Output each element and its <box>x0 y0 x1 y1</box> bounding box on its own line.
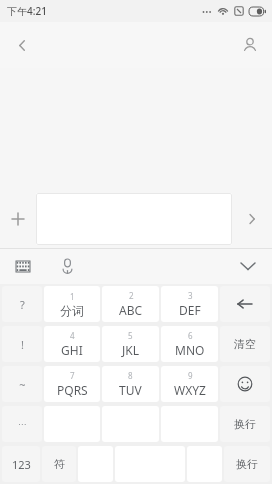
button[interactable]: Profile <box>228 23 272 67</box>
button[interactable]: 符 <box>42 446 76 482</box>
staticText: 5 <box>128 330 133 341</box>
staticText: 换行 <box>236 457 258 471</box>
button[interactable]: Key <box>220 286 270 322</box>
button[interactable]: 1 <box>44 286 100 322</box>
button[interactable]: ~ <box>2 366 42 402</box>
button[interactable]: 换行 <box>220 406 270 442</box>
button[interactable]: Back <box>0 23 44 67</box>
staticText: 2 <box>129 290 134 301</box>
staticText: JKL <box>122 342 139 358</box>
button[interactable]: Hide keyboard <box>234 252 262 280</box>
button[interactable]: 清空 <box>220 326 270 362</box>
staticText: 分词 <box>60 303 84 318</box>
button[interactable]: 8 <box>102 366 159 402</box>
staticText: GHI <box>61 342 83 358</box>
button[interactable]: Add attachment <box>0 190 36 248</box>
staticText: 1 <box>70 291 75 302</box>
button[interactable]: ⋯ <box>2 406 42 442</box>
staticText: 123 <box>12 457 31 472</box>
button[interactable]: 7 <box>44 366 100 402</box>
staticText: ? <box>20 297 25 312</box>
staticText: 3 <box>188 290 193 301</box>
staticText: 清空 <box>234 337 256 351</box>
button[interactable] <box>36 193 232 245</box>
staticText: TUV <box>119 382 142 398</box>
staticText: 9 <box>188 370 193 381</box>
staticText: ⋯ <box>18 420 26 429</box>
button[interactable]: 9 <box>161 366 218 402</box>
staticText: 7 <box>70 370 75 381</box>
staticText: 下午4:21 <box>7 4 47 18</box>
button[interactable]: 换行 <box>224 446 270 482</box>
button[interactable]: ? <box>2 286 42 322</box>
button[interactable]: Send <box>232 190 272 248</box>
button[interactable]: Voice input <box>54 253 80 279</box>
button[interactable]: 5 <box>102 326 159 362</box>
button[interactable]: Key <box>220 366 270 402</box>
button[interactable]: ! <box>2 326 42 362</box>
staticText: 6 <box>188 330 193 341</box>
button[interactable]: 4 <box>44 326 100 362</box>
staticText: PQRS <box>57 382 88 398</box>
staticText: WXYZ <box>174 382 206 398</box>
button[interactable]: Keyboard layout <box>10 253 36 279</box>
staticText: MNO <box>175 342 205 358</box>
staticText: 换行 <box>234 417 256 431</box>
staticText: 符 <box>54 457 65 471</box>
staticText: ! <box>21 337 24 352</box>
button[interactable]: 2 <box>102 286 159 322</box>
staticText: 8 <box>128 370 133 381</box>
staticText: ABC <box>119 302 143 318</box>
button[interactable]: 123 <box>2 446 40 482</box>
staticText: 4 <box>70 330 75 341</box>
staticText: DEF <box>179 302 201 318</box>
button[interactable]: 3 <box>161 286 218 322</box>
button[interactable]: 6 <box>161 326 218 362</box>
staticText: ~ <box>19 377 26 392</box>
